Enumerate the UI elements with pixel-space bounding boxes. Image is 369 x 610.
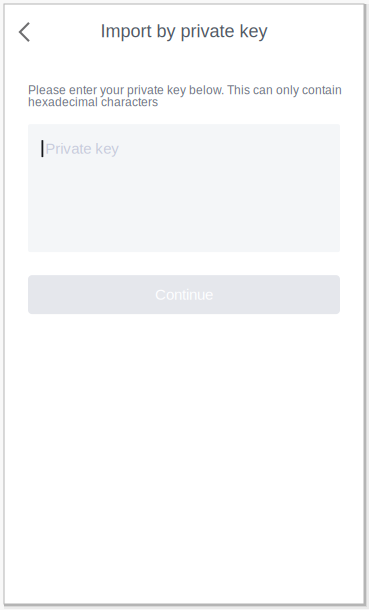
staticText: Please enter your private key below. Thi… [28, 84, 342, 108]
staticText: Import by private key [100, 21, 267, 41]
staticText: Continue [155, 286, 213, 303]
button[interactable]: Back [8, 16, 40, 48]
staticText: Private key [45, 140, 119, 157]
button[interactable]: Private key [28, 124, 340, 252]
